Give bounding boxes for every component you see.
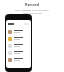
- staticText: Record: [25, 2, 39, 7]
- staticText: your meetings and calls easily: [15, 8, 49, 11]
- button[interactable]: [6, 56, 31, 63]
- button[interactable]: [6, 42, 31, 49]
- button[interactable]: [6, 35, 31, 42]
- button[interactable]: [6, 49, 31, 56]
- staticText: with a single tap: [23, 11, 42, 14]
- button[interactable]: [6, 28, 31, 35]
